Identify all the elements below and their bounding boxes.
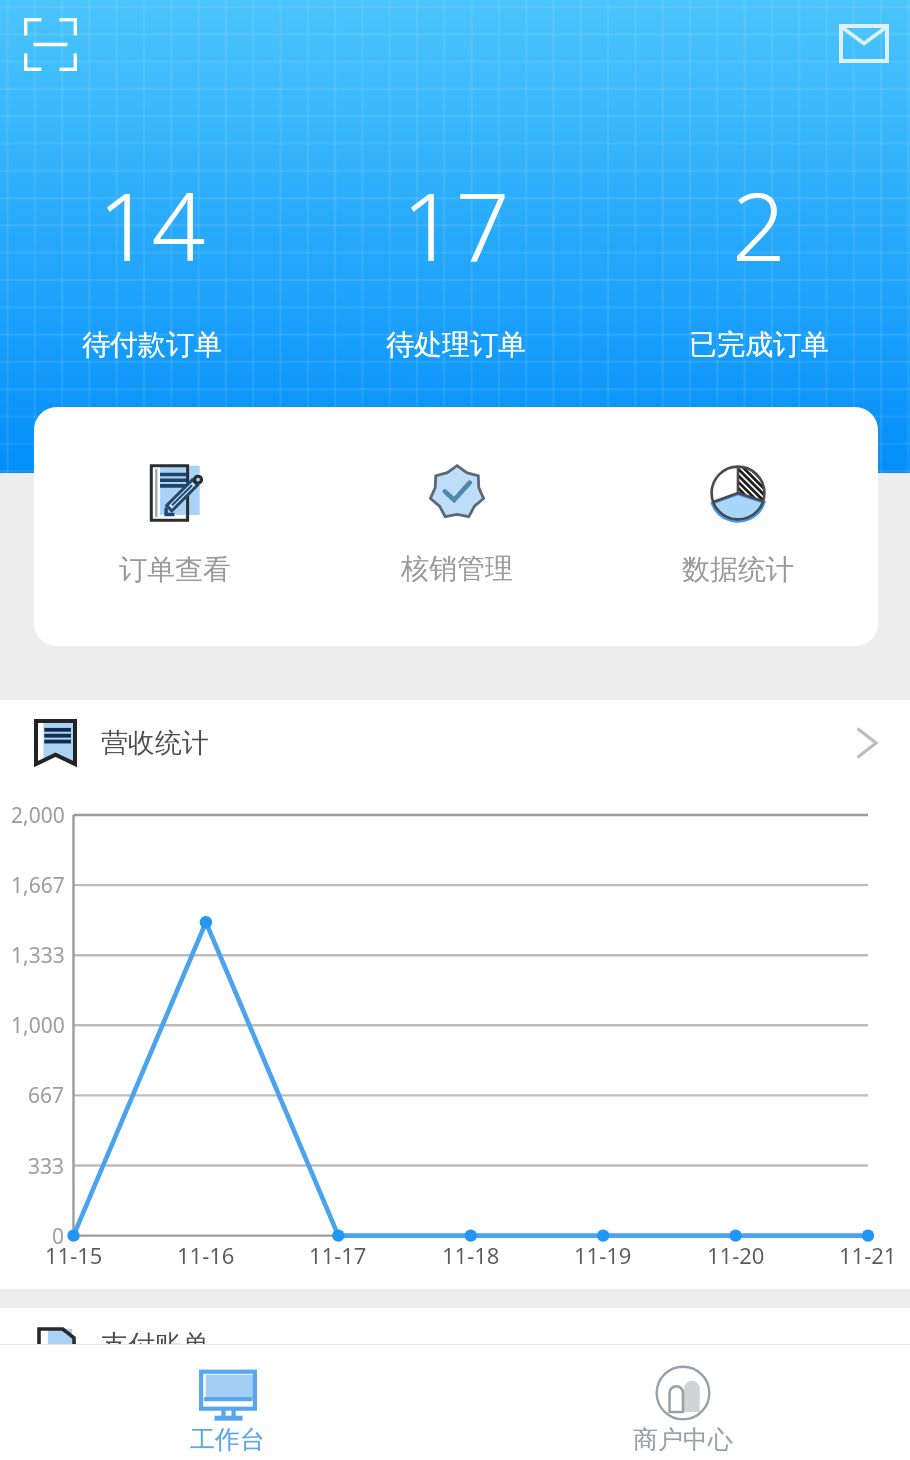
button[interactable]: 数据统计 <box>597 407 878 646</box>
staticText: 工作台 <box>190 1424 265 1455</box>
staticText: 667 <box>28 1081 65 1110</box>
staticText: 11-16 <box>177 1240 235 1270</box>
staticText: 营收统计 <box>101 726 209 760</box>
staticText: 11-20 <box>707 1240 765 1270</box>
staticText: 待处理订单 <box>386 327 526 362</box>
staticText: 333 <box>28 1152 65 1181</box>
button[interactable]: 支付账单 <box>0 1308 910 1344</box>
button[interactable]: Messages <box>827 7 900 80</box>
button[interactable]: 订单查看 <box>34 407 316 646</box>
staticText: 11-17 <box>309 1240 367 1270</box>
staticText: 2 <box>732 161 786 289</box>
button[interactable]: 商户中心 <box>455 1345 910 1460</box>
staticText: 商户中心 <box>633 1424 733 1455</box>
staticText: 11-15 <box>45 1240 103 1270</box>
staticText: 核销管理 <box>401 551 513 586</box>
staticText: 订单查看 <box>119 552 231 587</box>
button[interactable]: Scan QR code <box>10 4 90 84</box>
staticText: 0 <box>52 1222 65 1251</box>
staticText: 11-21 <box>839 1240 897 1270</box>
button[interactable]: 17 <box>304 161 607 362</box>
staticText: 1,000 <box>11 1011 65 1040</box>
button[interactable]: 2 <box>607 161 910 362</box>
button[interactable]: 工作台 <box>0 1345 455 1460</box>
staticText: 17 <box>402 161 510 289</box>
staticText: 待付款订单 <box>82 327 222 362</box>
staticText: 1,667 <box>11 871 65 900</box>
staticText: 2,000 <box>11 801 65 830</box>
staticText: 数据统计 <box>682 552 794 587</box>
button[interactable]: 14 <box>0 161 304 362</box>
staticText: 1,333 <box>11 941 65 970</box>
staticText: 支付账单 <box>101 1328 209 1362</box>
button[interactable]: 核销管理 <box>316 407 597 646</box>
staticText: 14 <box>98 161 206 289</box>
staticText: 已完成订单 <box>689 327 829 362</box>
button[interactable]: 营收统计 <box>0 700 910 797</box>
staticText: 11-19 <box>574 1240 632 1270</box>
staticText: 11-18 <box>442 1240 500 1270</box>
